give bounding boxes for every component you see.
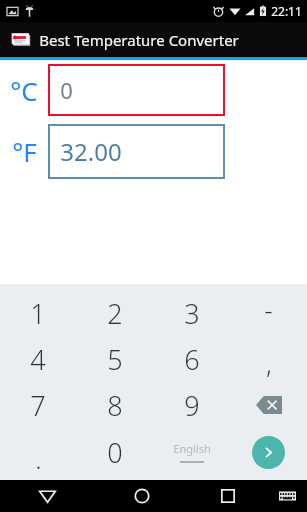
button[interactable]: Switch keyboard bbox=[267, 480, 307, 512]
staticText: 9 bbox=[184, 387, 200, 424]
staticText: °F bbox=[12, 134, 37, 169]
button[interactable]: 7 bbox=[0, 382, 76, 428]
button[interactable]: 32.00 bbox=[48, 124, 225, 179]
button[interactable]: 4 bbox=[0, 336, 76, 382]
staticText: , bbox=[266, 346, 272, 381]
button[interactable]: 0 bbox=[48, 64, 225, 116]
staticText: 0 bbox=[60, 75, 73, 105]
button[interactable]: Recent apps bbox=[189, 480, 267, 512]
staticText: English bbox=[173, 441, 211, 456]
staticText: 1 bbox=[30, 295, 46, 332]
button[interactable]: 3 bbox=[153, 290, 230, 336]
button[interactable]: . bbox=[0, 428, 76, 476]
button[interactable]: , bbox=[230, 336, 307, 382]
button[interactable]: 8 bbox=[76, 382, 153, 428]
staticText: 2 bbox=[107, 295, 123, 332]
staticText: 4 bbox=[30, 341, 46, 378]
staticText: 5 bbox=[107, 341, 123, 378]
button[interactable]: 5 bbox=[76, 336, 153, 382]
staticText: 8 bbox=[107, 387, 123, 424]
staticText: 3 bbox=[184, 295, 200, 332]
button[interactable]: Back bbox=[0, 480, 95, 512]
staticText: 32.00 bbox=[60, 135, 122, 168]
button[interactable]: Enter bbox=[230, 428, 307, 476]
button[interactable]: English language bbox=[153, 428, 230, 476]
button[interactable]: 6 bbox=[153, 336, 230, 382]
button[interactable]: Backspace bbox=[230, 382, 307, 428]
button[interactable]: 1 bbox=[0, 290, 76, 336]
staticText: 0 bbox=[107, 434, 123, 471]
staticText: °C bbox=[10, 73, 38, 108]
button[interactable]: Home bbox=[95, 480, 189, 512]
button[interactable]: 0 bbox=[76, 428, 153, 476]
button[interactable]: 9 bbox=[153, 382, 230, 428]
staticText: 7 bbox=[30, 387, 46, 424]
button[interactable]: 2 bbox=[76, 290, 153, 336]
staticText: 22:11 bbox=[271, 3, 302, 19]
button[interactable]: - bbox=[230, 290, 307, 336]
staticText: 6 bbox=[184, 341, 200, 378]
staticText: Best Temperature Converter bbox=[39, 30, 239, 50]
staticText: - bbox=[264, 292, 273, 327]
staticText: . bbox=[35, 441, 42, 476]
